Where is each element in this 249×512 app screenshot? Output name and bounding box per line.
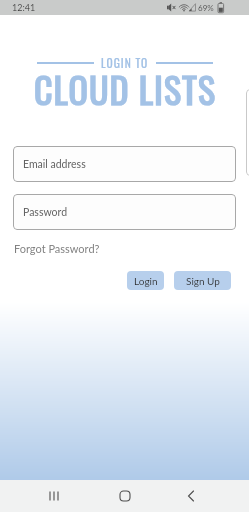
button[interactable]: Forgot Password? <box>14 242 100 255</box>
staticText: 12:41 <box>12 2 36 13</box>
button[interactable]: Sign Up <box>174 271 231 290</box>
button[interactable] <box>115 486 135 506</box>
button[interactable]: Password <box>13 194 236 230</box>
button[interactable] <box>44 486 64 506</box>
staticText: LOGIN TO <box>101 54 149 71</box>
button[interactable] <box>181 486 201 506</box>
button[interactable]: Login <box>127 271 164 290</box>
staticText: CLOUD LISTS <box>34 62 216 115</box>
button[interactable]: Email address <box>13 146 236 182</box>
staticText: Login <box>134 275 158 287</box>
staticText: Sign Up <box>186 275 220 287</box>
staticText: Email address <box>23 158 86 171</box>
staticText: 69% <box>198 3 214 13</box>
staticText: Password <box>23 206 68 219</box>
